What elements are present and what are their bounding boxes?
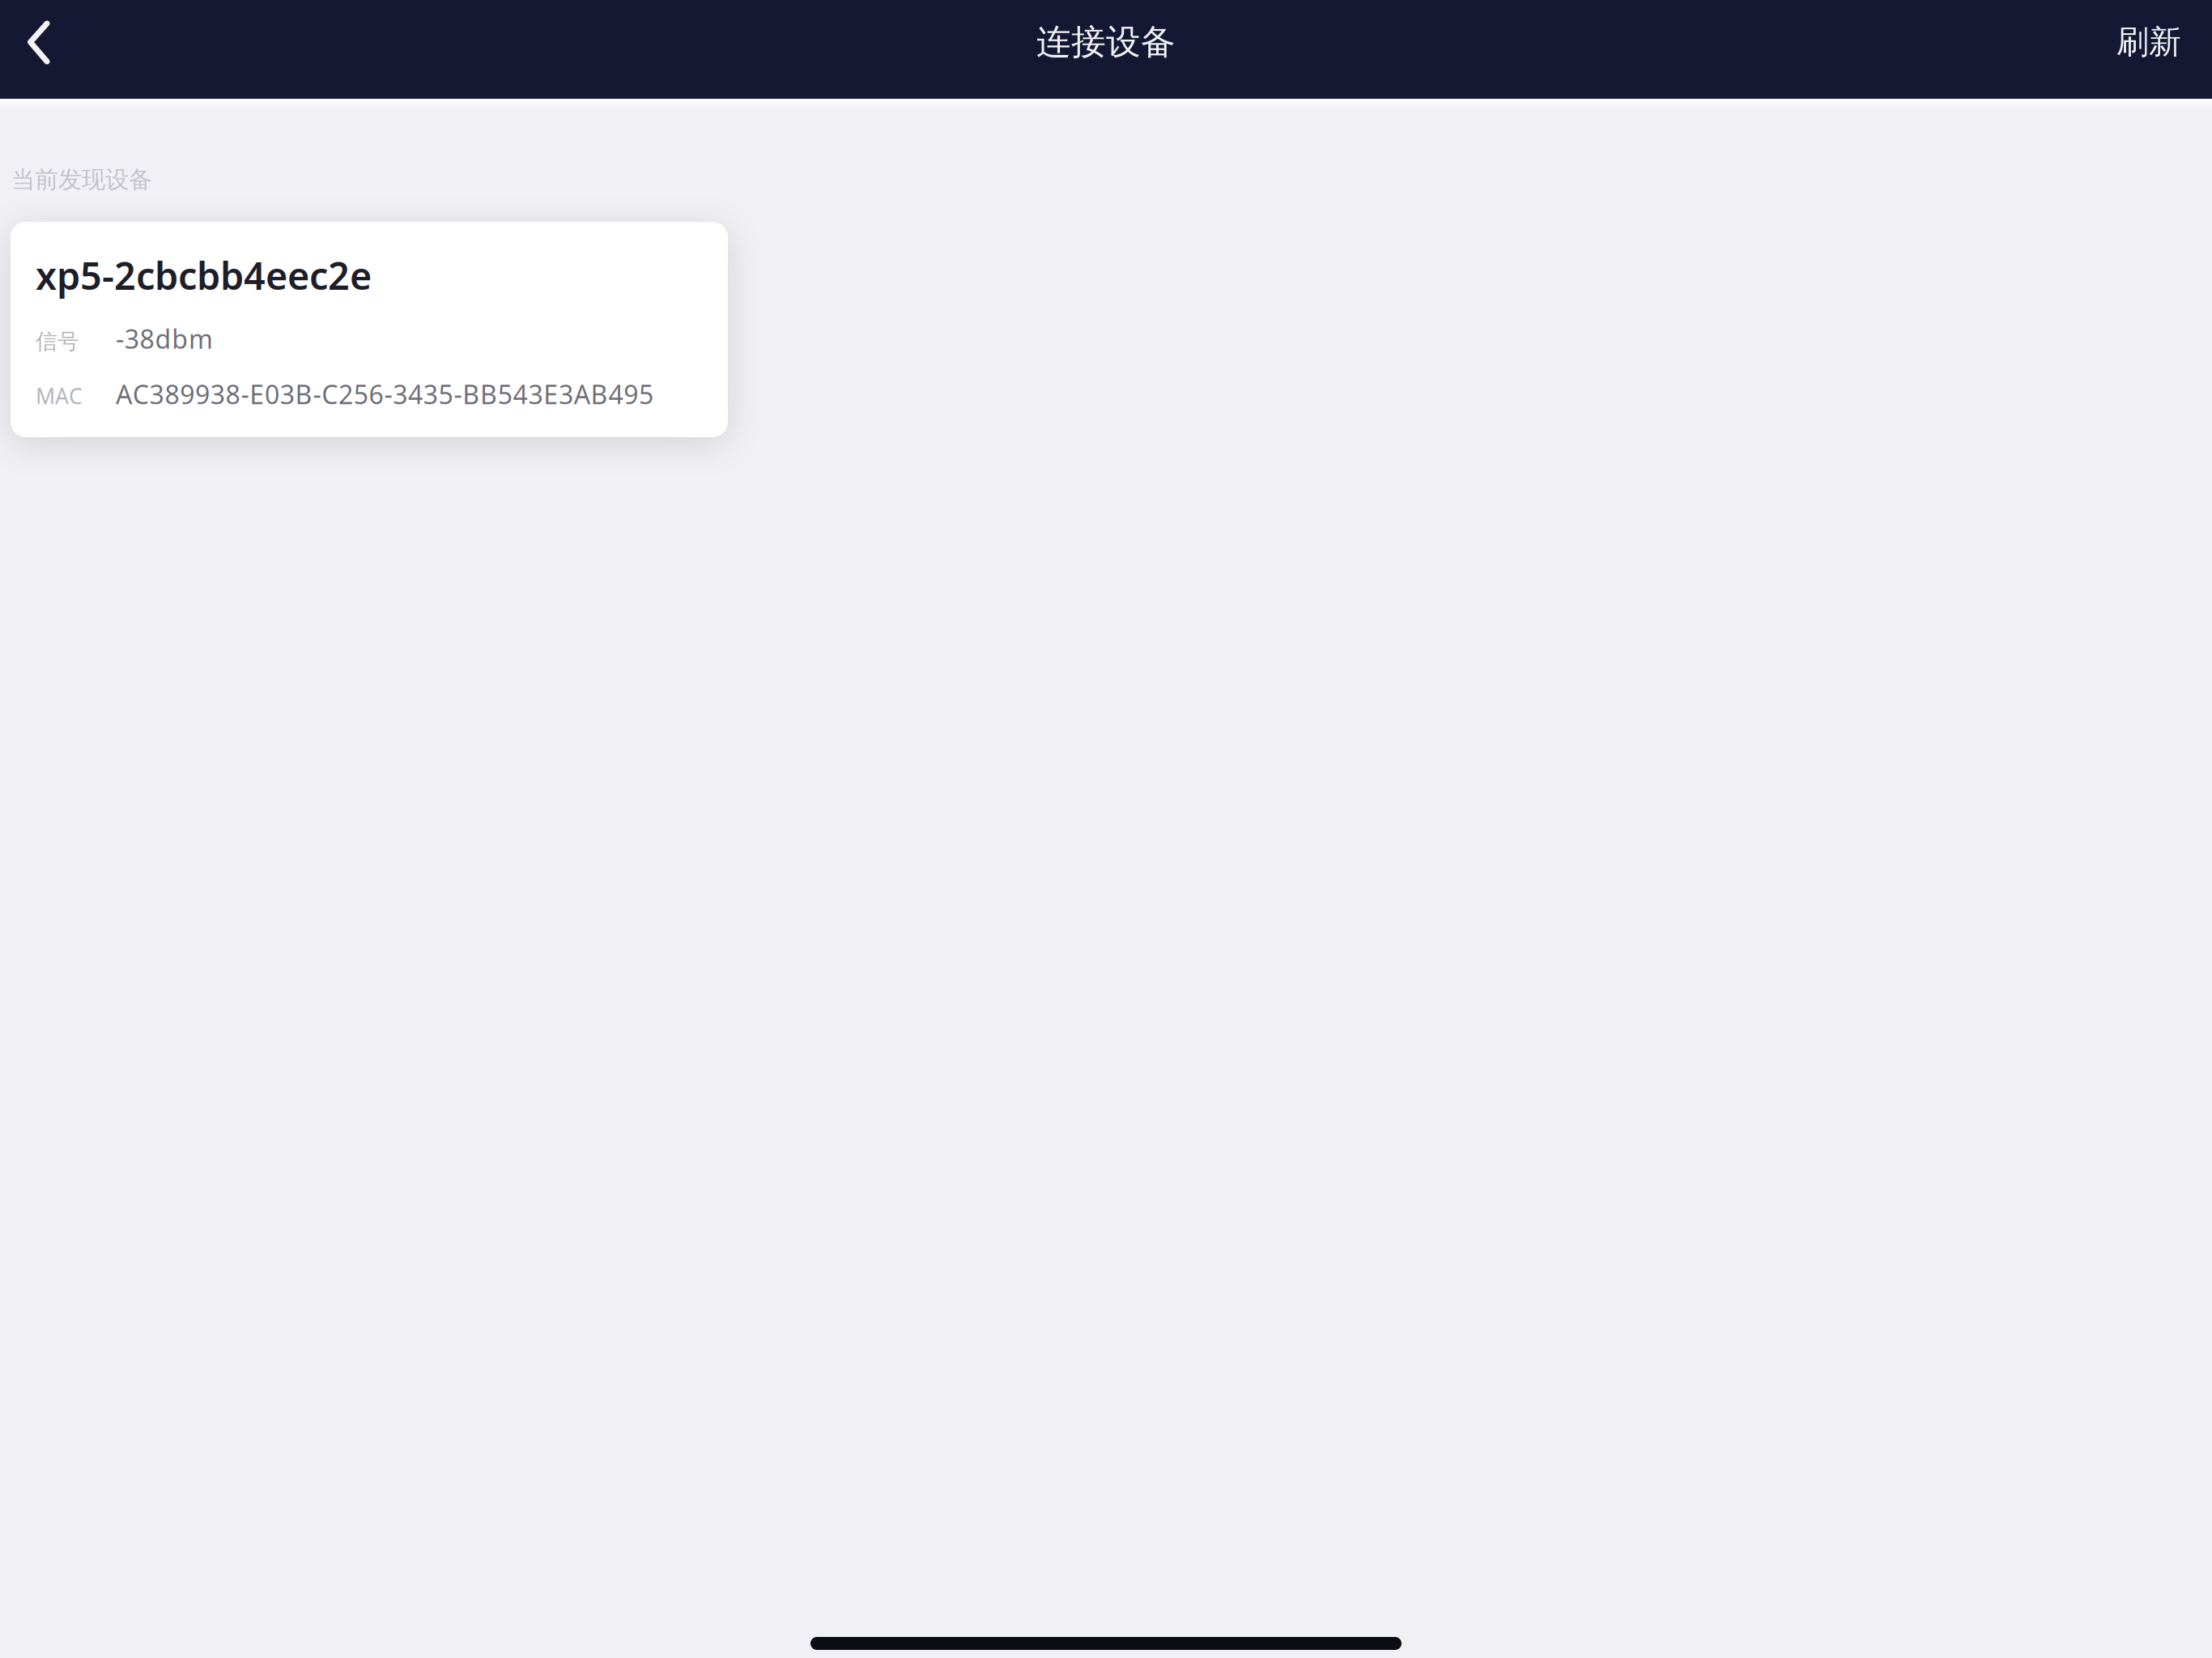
staticText: 刷新 bbox=[2116, 22, 2181, 62]
staticText: AC389938-E03B-C256-3435-BB543E3AB495 bbox=[116, 377, 653, 411]
staticText: 连接设备 bbox=[1036, 21, 1176, 63]
staticText: -38dbm bbox=[116, 321, 213, 356]
button[interactable]: Back bbox=[0, 0, 74, 84]
button[interactable]: xp5-2cbcbb4eec2e bbox=[11, 222, 728, 437]
staticText: MAC bbox=[36, 381, 83, 410]
staticText: 信号 bbox=[36, 328, 79, 355]
staticText: xp5-2cbcbb4eec2e bbox=[36, 250, 372, 300]
button[interactable]: 刷新 bbox=[2089, 0, 2212, 84]
staticText: 当前发现设备 bbox=[11, 165, 152, 194]
